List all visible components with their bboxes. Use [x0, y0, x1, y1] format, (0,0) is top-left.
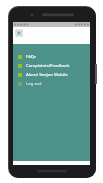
staticText: Log out	[26, 81, 42, 87]
staticText: FAQs	[26, 54, 37, 60]
staticText: About Sanjoo Mobile	[26, 72, 68, 78]
button[interactable]: Complaints/Feedback	[13, 61, 90, 70]
button[interactable]: About Sanjoo Mobile	[13, 70, 90, 79]
button[interactable]: FAQs	[13, 52, 90, 61]
button[interactable]: Profile image	[16, 30, 22, 36]
button[interactable]: Log out	[13, 79, 90, 88]
staticText: Complaints/Feedback	[26, 63, 70, 69]
